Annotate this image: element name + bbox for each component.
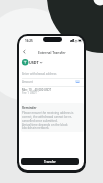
- staticText: External Transfer: [38, 50, 66, 55]
- staticText: Enter withdrawal address: [22, 72, 57, 76]
- staticText: Transfer: [44, 160, 56, 164]
- staticText: USDT: [29, 60, 39, 65]
- staticText: correct, the withdrawal cannot be re-: [22, 115, 73, 119]
- staticText: 16:25: [25, 39, 33, 43]
- staticText: Fee 1 USDT: [22, 91, 37, 95]
- staticText: Please ensure the receiving address is: [22, 111, 74, 115]
- staticText: blockchain network.: [22, 126, 50, 130]
- staticText: cancelled once submitted.: [22, 119, 58, 123]
- staticText: Arrival time depends on the block: [22, 123, 68, 127]
- staticText: Reminder: [22, 106, 37, 110]
- staticText: Min: 10 – 40,000 USDT: [22, 88, 52, 92]
- staticText: Amount: [22, 80, 33, 84]
- staticText: Max: [76, 81, 80, 83]
